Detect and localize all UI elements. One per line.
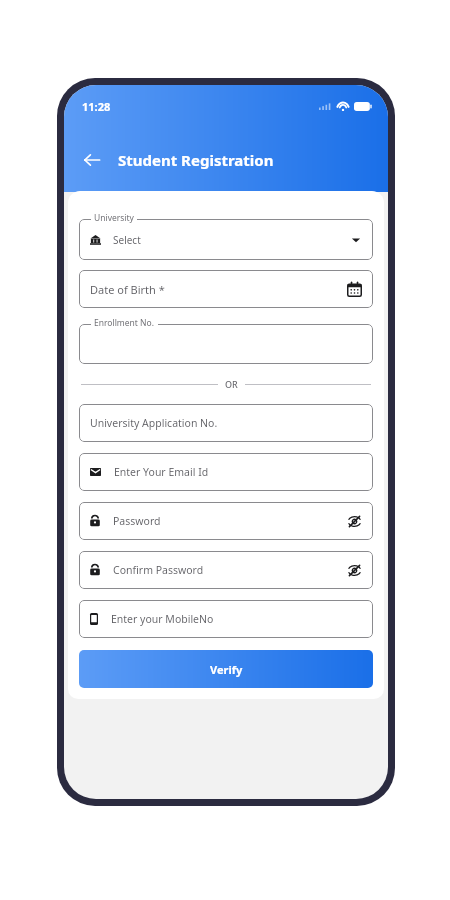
staticText: 11:28	[82, 99, 111, 114]
staticText: University	[94, 212, 134, 224]
button[interactable]: Toggle password visibility	[347, 563, 362, 578]
button[interactable]: Verify	[79, 650, 373, 688]
button[interactable]: Select	[79, 212, 373, 260]
button[interactable]: Enter your MobileNo	[79, 600, 373, 638]
staticText: Date of Birth *	[90, 282, 165, 297]
button[interactable]: Open university list	[350, 234, 362, 246]
staticText: Select	[113, 233, 141, 247]
button[interactable]: Password	[79, 502, 373, 540]
button[interactable]: Pick date	[347, 282, 362, 297]
button[interactable]: University Application No.	[79, 404, 373, 442]
button[interactable]: Enter Your Email Id	[79, 453, 373, 491]
button[interactable]: Confirm Password	[79, 551, 373, 589]
button[interactable]: Date of Birth *	[79, 270, 373, 308]
button[interactable]: Back	[72, 140, 112, 180]
staticText: Password	[113, 514, 161, 528]
staticText: University Application No.	[90, 416, 218, 430]
staticText: Enter Your Email Id	[114, 465, 209, 479]
staticText: OR	[225, 378, 238, 390]
staticText: Confirm Password	[113, 563, 204, 577]
staticText: Student Registration	[118, 150, 274, 170]
staticText: Verify	[210, 662, 243, 677]
button[interactable]: Toggle password visibility	[347, 514, 362, 529]
staticText: Enter your MobileNo	[111, 612, 214, 626]
staticText: Enrollment No.	[94, 317, 155, 329]
button[interactable]: Enrollment No.	[79, 317, 373, 364]
